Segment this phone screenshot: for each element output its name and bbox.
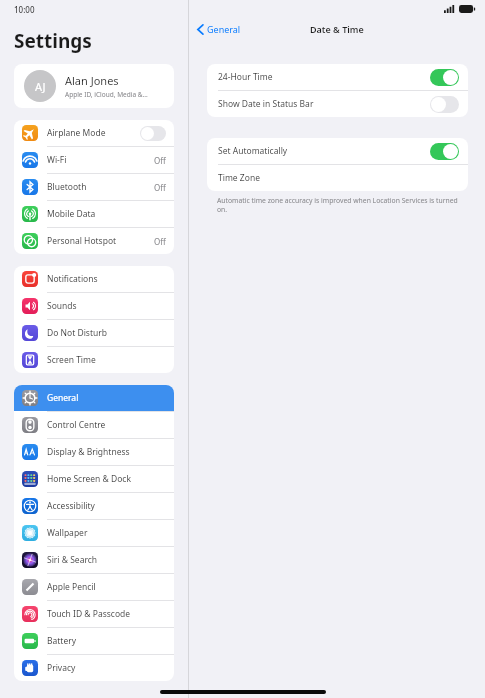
button[interactable]: Set Automatically bbox=[207, 138, 468, 164]
staticText: Date & Time bbox=[310, 23, 364, 35]
button[interactable]: Off bbox=[140, 126, 166, 141]
staticText: Airplane Mode bbox=[47, 127, 106, 139]
button[interactable]: Do Not Disturb bbox=[14, 320, 174, 346]
staticText: Do Not Disturb bbox=[47, 327, 107, 339]
button[interactable]: 24-Hour Time bbox=[207, 64, 468, 90]
staticText: Automatic time zone accuracy is improved… bbox=[217, 196, 459, 214]
button[interactable]: Airplane Mode bbox=[14, 120, 174, 146]
button[interactable]: Siri & Search bbox=[14, 547, 174, 573]
staticText: Privacy bbox=[47, 662, 76, 674]
staticText: Set Automatically bbox=[218, 145, 288, 157]
staticText: Show Date in Status Bar bbox=[218, 98, 314, 110]
staticText: Wi-Fi bbox=[47, 154, 67, 166]
button[interactable]: Off bbox=[430, 96, 459, 113]
staticText: Time Zone bbox=[218, 172, 260, 184]
staticText: Accessibility bbox=[47, 500, 95, 512]
staticText: Siri & Search bbox=[47, 554, 98, 566]
button[interactable]: Notifications bbox=[14, 266, 174, 292]
button[interactable]: General bbox=[14, 385, 174, 411]
button[interactable]: AJ bbox=[14, 64, 174, 108]
button[interactable]: Sounds bbox=[14, 293, 174, 319]
staticText: Mobile Data bbox=[47, 208, 96, 220]
staticText: Personal Hotspot bbox=[47, 235, 117, 247]
staticText: Off bbox=[154, 182, 166, 193]
button[interactable]: Show Date in Status Bar bbox=[207, 91, 468, 117]
button[interactable]: Accessibility bbox=[14, 493, 174, 519]
staticText: Apple ID, iCloud, Media &... bbox=[65, 90, 148, 99]
button[interactable]: On bbox=[430, 143, 459, 160]
button[interactable]: Home Screen & Dock bbox=[14, 466, 174, 492]
staticText: Off bbox=[154, 155, 166, 166]
staticText: Control Centre bbox=[47, 419, 106, 431]
staticText: Sounds bbox=[47, 300, 77, 312]
staticText: AJ bbox=[35, 79, 46, 94]
staticText: Bluetooth bbox=[47, 181, 87, 193]
staticText: Off bbox=[154, 236, 166, 247]
button[interactable]: Bluetooth bbox=[14, 174, 174, 200]
button[interactable]: Wi-Fi bbox=[14, 147, 174, 173]
staticText: Display & Brightness bbox=[47, 446, 130, 458]
staticText: Battery bbox=[47, 635, 77, 647]
button[interactable]: Time Zone bbox=[207, 165, 468, 191]
button[interactable]: Control Centre bbox=[14, 412, 174, 438]
staticText: Notifications bbox=[47, 273, 98, 285]
staticText: 10:00 bbox=[14, 4, 35, 15]
button[interactable]: Display & Brightness bbox=[14, 439, 174, 465]
button[interactable]: Apple Pencil bbox=[14, 574, 174, 600]
staticText: General bbox=[47, 392, 79, 404]
button[interactable]: Battery bbox=[14, 628, 174, 654]
button[interactable]: General bbox=[189, 21, 247, 37]
staticText: Wallpaper bbox=[47, 527, 88, 539]
button[interactable]: Wallpaper bbox=[14, 520, 174, 546]
button[interactable]: Touch ID & Passcode bbox=[14, 601, 174, 627]
staticText: Touch ID & Passcode bbox=[47, 608, 131, 620]
button[interactable]: Privacy bbox=[14, 655, 174, 681]
staticText: General bbox=[207, 23, 241, 35]
button[interactable]: On bbox=[430, 69, 459, 86]
staticText: Apple Pencil bbox=[47, 581, 96, 593]
staticText: Screen Time bbox=[47, 354, 96, 366]
button[interactable]: Personal Hotspot bbox=[14, 228, 174, 254]
staticText: Settings bbox=[14, 28, 92, 54]
staticText: 24-Hour Time bbox=[218, 71, 273, 83]
staticText: Home Screen & Dock bbox=[47, 473, 131, 485]
button[interactable]: Mobile Data bbox=[14, 201, 174, 227]
button[interactable]: Screen Time bbox=[14, 347, 174, 373]
staticText: Alan Jones bbox=[65, 73, 119, 88]
